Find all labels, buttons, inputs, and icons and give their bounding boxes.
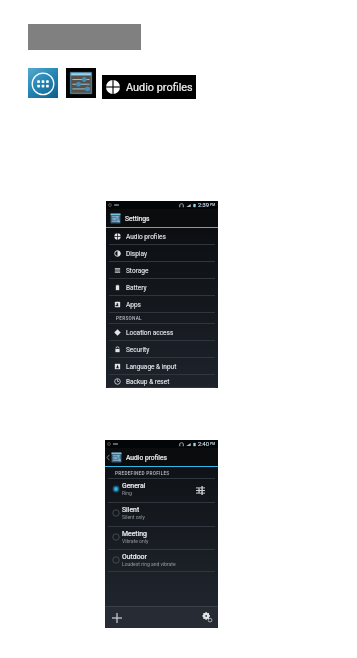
button[interactable]: Audio profiles xyxy=(106,228,218,245)
staticText: Audio profiles xyxy=(126,233,166,241)
button[interactable]: Storage xyxy=(106,262,218,279)
staticText: Vibrate only xyxy=(122,538,149,544)
button[interactable]: Backup & reset xyxy=(106,375,218,388)
staticText: Outdoor xyxy=(122,553,147,561)
button[interactable]: Security xyxy=(106,341,218,358)
button[interactable]: Settings xyxy=(66,68,96,98)
button[interactable]: Add profile xyxy=(105,607,128,628)
staticText: PREDEFINED PROFILES xyxy=(115,471,170,477)
button[interactable]: Apps xyxy=(106,296,218,313)
staticText: Storage xyxy=(126,267,149,275)
staticText: Apps xyxy=(126,301,141,309)
button[interactable]: Outdoor xyxy=(105,550,218,572)
staticText: Silent only xyxy=(122,514,145,520)
button[interactable]: General xyxy=(105,479,218,503)
staticText: Security xyxy=(126,346,150,354)
button[interactable]: Silent xyxy=(105,503,218,527)
staticText: Backup & reset xyxy=(126,378,170,386)
staticText: 2:39 xyxy=(198,202,209,209)
button[interactable]: All apps xyxy=(28,68,58,98)
staticText: Location access xyxy=(126,329,174,337)
button[interactable]: Meeting xyxy=(105,527,218,550)
button[interactable]: Location access xyxy=(106,324,218,341)
staticText: PM xyxy=(210,203,216,207)
button[interactable]: Audio profiles xyxy=(102,75,196,99)
button[interactable]: Battery xyxy=(106,279,218,296)
staticText: Battery xyxy=(126,284,147,292)
button[interactable]: Language & input xyxy=(106,358,218,375)
staticText: PM xyxy=(210,442,216,446)
staticText: PERSONAL xyxy=(116,316,142,322)
staticText: 2:40 xyxy=(198,441,209,448)
staticText: Display xyxy=(126,250,147,258)
staticText: Silent xyxy=(122,506,140,514)
button[interactable]: Display xyxy=(106,245,218,262)
staticText: Settings xyxy=(125,215,150,223)
staticText: Ring xyxy=(122,490,132,496)
staticText: Language & input xyxy=(126,363,177,371)
staticText: Loudest ring and vibrate xyxy=(122,561,176,567)
button[interactable]: More settings xyxy=(196,607,218,628)
staticText: General xyxy=(122,482,146,490)
staticText: Audio profiles xyxy=(126,454,167,462)
staticText: Audio profiles xyxy=(126,81,193,94)
staticText: Meeting xyxy=(122,530,147,538)
